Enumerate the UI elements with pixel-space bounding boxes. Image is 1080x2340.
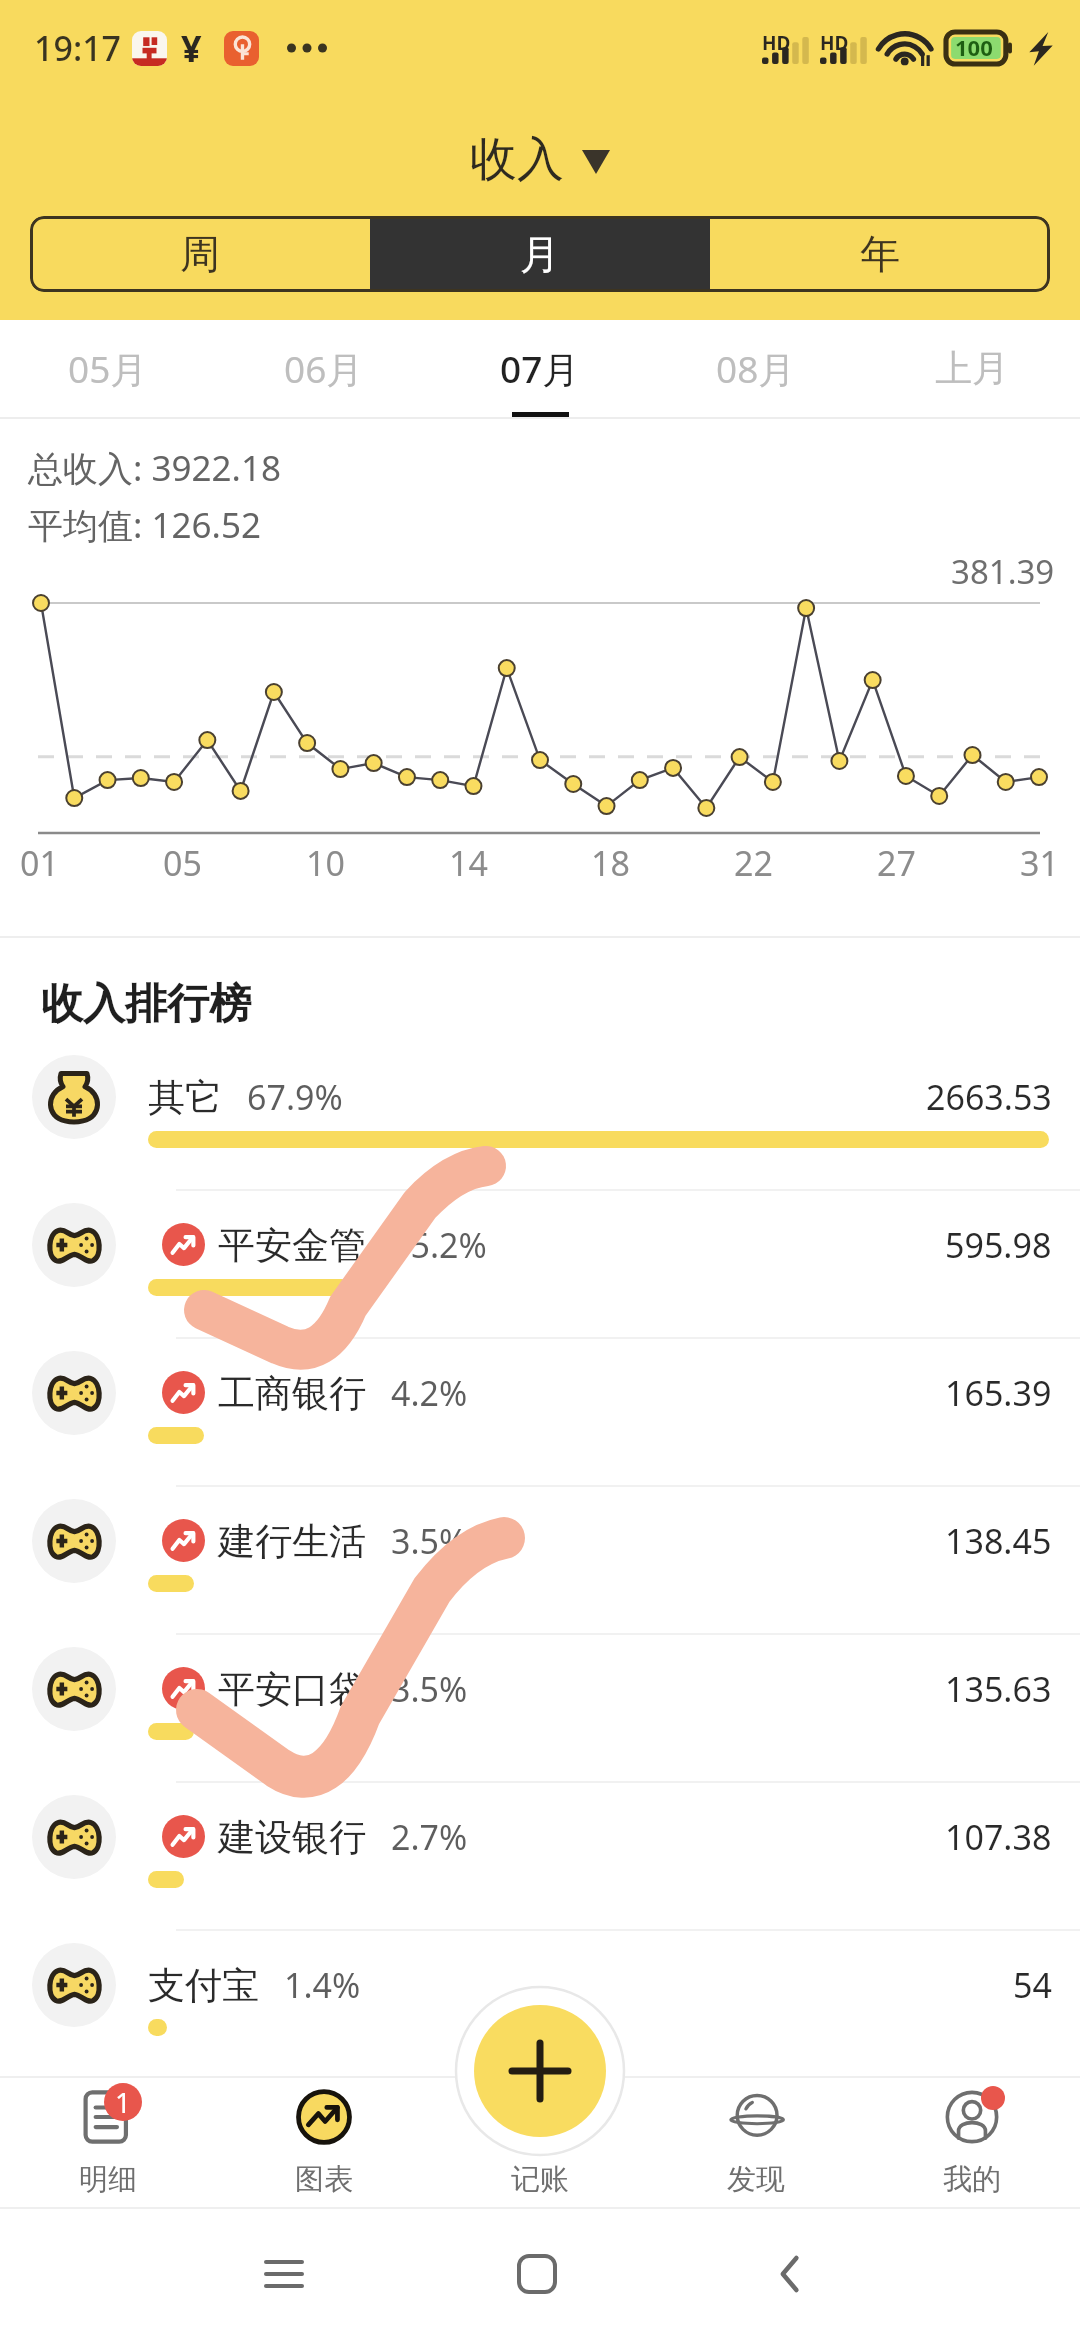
staticText: 19:17 [34, 25, 122, 71]
staticText: 图表 [295, 2161, 353, 2198]
button[interactable]: 周 [30, 216, 370, 292]
staticText: 收入 [470, 130, 564, 189]
staticText: 4.2% [391, 1370, 468, 1416]
staticText: 建设银行 [218, 1814, 366, 1861]
staticText: 165.39 [945, 1370, 1052, 1416]
staticText: 2663.53 [926, 1074, 1052, 1120]
button[interactable] [0, 1171, 1080, 1319]
button[interactable]: 记账 [432, 2078, 648, 2208]
button[interactable]: Home [517, 2254, 557, 2294]
staticText: 18 [591, 840, 630, 886]
staticText: 总收入: 3922.18 [28, 444, 281, 492]
staticText: 平均值: 126.52 [28, 501, 261, 549]
button[interactable]: 08月 [648, 320, 864, 417]
button[interactable]: 月 [370, 216, 710, 292]
button[interactable]: 1 [0, 2078, 216, 2208]
button[interactable]: 上月 [864, 320, 1080, 417]
button[interactable] [0, 1467, 1080, 1615]
staticText: 3.5% [391, 1666, 468, 1712]
staticText: 记账 [511, 2161, 569, 2198]
staticText: 其它 [148, 1074, 222, 1121]
button[interactable]: Back [770, 2254, 810, 2294]
staticText: 07月 [500, 343, 580, 394]
staticText: 138.45 [945, 1518, 1052, 1564]
staticText: 1 [115, 2083, 132, 2121]
staticText: 年 [860, 229, 900, 279]
button[interactable] [0, 1763, 1080, 1911]
staticText: 381.39 [951, 549, 1055, 594]
staticText: 支付宝 [148, 1962, 259, 2009]
staticText: 14 [449, 840, 488, 886]
staticText: 67.9% [247, 1074, 343, 1120]
button[interactable]: 05月 [0, 320, 216, 417]
staticText: 135.63 [945, 1666, 1052, 1712]
staticText: 05月 [68, 343, 148, 394]
button[interactable]: 发现 [648, 2078, 864, 2208]
button[interactable]: 07月 [432, 320, 648, 417]
staticText: 3.5% [391, 1518, 468, 1564]
button[interactable]: 06月 [216, 320, 432, 417]
button[interactable]: 我的 [864, 2078, 1080, 2208]
staticText: 100 [955, 32, 993, 62]
button[interactable]: 年 [710, 216, 1050, 292]
staticText: 上月 [935, 345, 1009, 392]
staticText: 平安金管 [218, 1222, 366, 1269]
staticText: 08月 [716, 343, 796, 394]
staticText: 595.98 [945, 1222, 1052, 1268]
staticText: ¥ [181, 24, 202, 73]
staticText: 平安口袋 [218, 1666, 366, 1713]
staticText: 月 [520, 229, 560, 279]
staticText: 工商银行 [218, 1370, 366, 1417]
staticText: 收入排行榜 [41, 978, 251, 1031]
staticText: HD [820, 30, 849, 56]
staticText: 22 [734, 840, 773, 886]
button[interactable] [0, 1023, 1080, 1171]
staticText: 54 [1013, 1962, 1052, 2008]
staticText: 2.7% [391, 1814, 468, 1860]
staticText: 10 [306, 840, 345, 886]
staticText: 01 [20, 840, 59, 886]
staticText: 31 [1020, 840, 1059, 886]
staticText: 明细 [79, 2161, 137, 2198]
button[interactable]: Recents [264, 2254, 304, 2294]
button[interactable]: 图表 [216, 2078, 432, 2208]
staticText: 1.4% [284, 1962, 361, 2008]
button[interactable] [0, 1911, 1080, 2059]
button[interactable] [0, 1319, 1080, 1467]
staticText: 27 [877, 840, 916, 886]
staticText: 发现 [727, 2161, 785, 2198]
staticText: 107.38 [945, 1814, 1052, 1860]
button[interactable] [0, 1615, 1080, 1763]
staticText: 我的 [943, 2161, 1001, 2198]
staticText: 周 [180, 229, 220, 279]
staticText: 15.2% [391, 1222, 487, 1268]
staticText: 06月 [284, 343, 364, 394]
staticText: 建行生活 [218, 1518, 366, 1565]
button[interactable]: 记一笔 [474, 2005, 606, 2137]
staticText: 05 [163, 840, 202, 886]
staticText: HD [762, 30, 791, 56]
